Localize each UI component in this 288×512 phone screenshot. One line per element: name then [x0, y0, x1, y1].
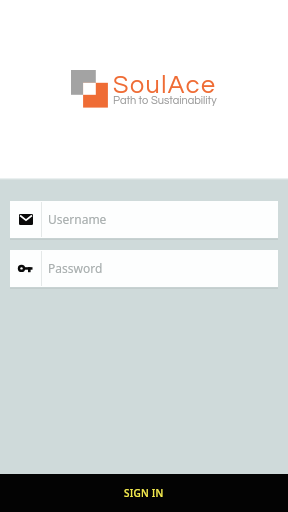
staticText: Password: [48, 260, 103, 276]
button[interactable]: Password field: [10, 250, 278, 287]
staticText: SoulAce: [113, 72, 217, 98]
staticText: SIGN IN: [124, 486, 164, 500]
button[interactable]: Username field: [10, 201, 278, 238]
other: SoulAce logo: [71, 70, 108, 108]
staticText: Username: [48, 211, 107, 227]
button[interactable]: SIGN IN: [0, 474, 288, 512]
staticText: Path to Sustainability: [113, 95, 217, 106]
